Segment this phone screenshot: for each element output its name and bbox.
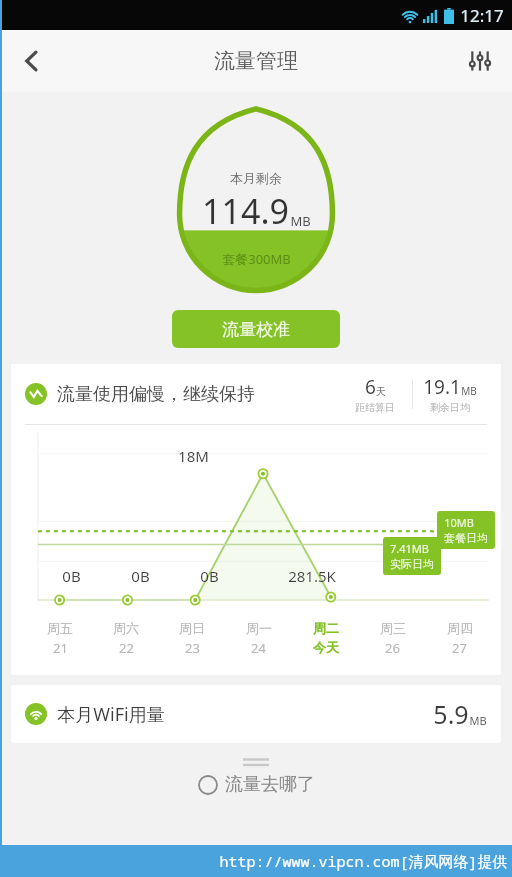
button[interactable]: Settings [454,35,506,87]
staticText: 周四 [447,620,473,636]
staticText: 周二 [313,620,339,636]
staticText: 281.5K [288,566,336,586]
button[interactable]: Back [6,35,58,87]
staticText: 26 [385,639,400,657]
staticText: 12:17 [460,4,504,27]
staticText: 本月WiFi用量 [57,702,165,727]
staticText: 0B [131,566,150,586]
staticText: 本月剩余 [230,170,282,186]
staticText: MB [290,212,311,230]
staticText: http://www.vipcn.com[清风网络]提供 [219,851,508,871]
button[interactable]: 本月WiFi用量 [11,685,501,743]
button[interactable]: 流量使用偏慢，继续保持 [11,364,501,675]
button[interactable]: 流量去哪了 [0,744,512,796]
staticText: 流量校准 [222,319,290,340]
staticText: 24 [251,639,266,657]
staticText: 22 [119,639,134,657]
staticText: 5.9 [433,697,469,731]
staticText: 周六 [113,620,139,636]
staticText: 天 [376,385,386,398]
staticText: 套餐300MB [222,250,291,268]
staticText: 实际日均 [390,557,434,571]
staticText: 剩余日均 [430,401,470,414]
staticText: 6 [365,374,376,400]
button[interactable]: 流量校准 [172,310,340,348]
staticText: 周日 [179,620,205,636]
staticText: 7.41MB [390,541,429,556]
staticText: 周一 [246,620,272,636]
staticText: 10MB [444,515,474,530]
staticText: 距结算日 [355,401,395,414]
staticText: 0B [62,566,81,586]
staticText: 周三 [380,620,406,636]
staticText: 114.9 [202,188,289,234]
staticText: 流量管理 [214,48,298,74]
staticText: 27 [452,639,467,657]
staticText: 流量使用偏慢，继续保持 [57,383,255,406]
staticText: MB [461,384,477,398]
staticText: 23 [185,639,200,657]
staticText: 今天 [313,639,339,655]
staticText: 21 [53,639,68,657]
staticText: MB [469,713,487,728]
staticText: 周五 [47,620,73,636]
staticText: 19.1 [423,374,461,400]
staticText: 0B [200,566,219,586]
staticText: 流量去哪了 [225,773,315,796]
staticText: 套餐日均 [444,531,488,545]
staticText: 18M [178,446,209,466]
